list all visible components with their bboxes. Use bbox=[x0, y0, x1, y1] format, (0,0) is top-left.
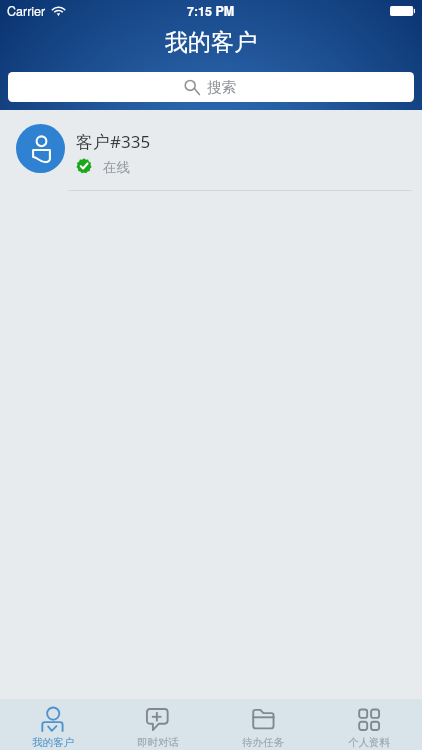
button[interactable]: 个人资料 bbox=[316, 699, 422, 750]
staticText: 我的客户 bbox=[32, 736, 74, 749]
button[interactable]: 即时对话 bbox=[105, 699, 210, 750]
staticText: 待办任务 bbox=[242, 736, 284, 749]
staticText: 个人资料 bbox=[348, 736, 390, 749]
button[interactable]: 待办任务 bbox=[210, 699, 316, 750]
button[interactable]: 搜索 bbox=[8, 72, 414, 102]
staticText: 我的客户 bbox=[165, 28, 257, 57]
staticText: 在线 bbox=[103, 159, 130, 176]
button[interactable]: 我的客户 bbox=[0, 699, 105, 750]
staticText: 7:15 PM bbox=[187, 2, 235, 20]
staticText: 客户#335 bbox=[76, 130, 151, 153]
button[interactable]: 客户#335 bbox=[0, 110, 422, 191]
staticText: 搜索 bbox=[207, 78, 236, 96]
staticText: 即时对话 bbox=[137, 736, 179, 749]
staticText: Carrier bbox=[7, 2, 46, 20]
